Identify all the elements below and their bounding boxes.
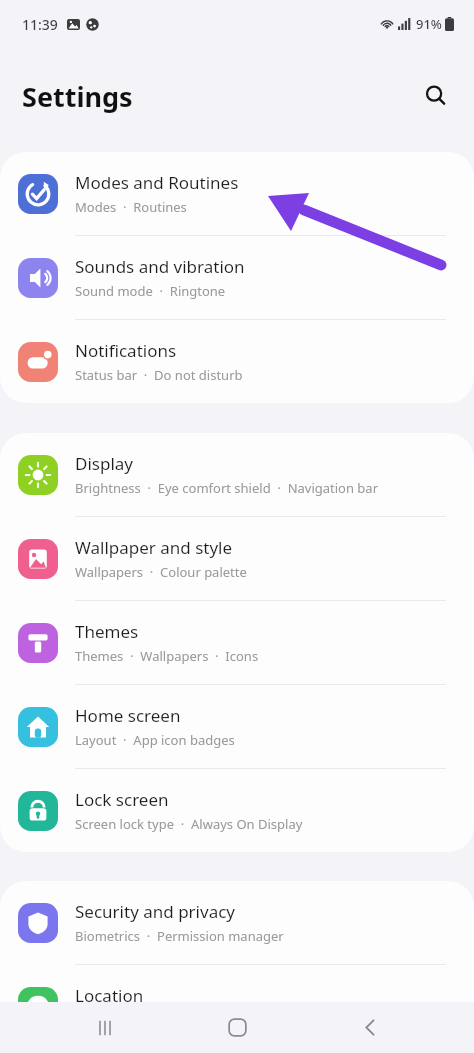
staticText: Modes and Routines [75,171,239,194]
button[interactable]: Home screen [0,685,474,769]
staticText: Sound mode · Ringtone [75,282,226,300]
staticText: Status bar · Do not disturb [75,366,243,384]
staticText: Security and privacy [75,900,236,923]
button[interactable]: Wallpaper and style [0,517,474,601]
staticText: 11:39 [22,15,58,34]
button[interactable]: Notifications [0,320,474,403]
button[interactable]: Back [342,1002,398,1053]
staticText: Location services · Recent access [75,1011,281,1029]
button[interactable]: Themes [0,601,474,685]
staticText: Lock screen [75,788,169,811]
staticText: Modes · Routines [75,198,187,216]
staticText: 91% [416,15,442,33]
staticText: Brightness · Eye comfort shield · Naviga… [75,479,379,497]
staticText: Display [75,452,133,475]
button[interactable]: Display [0,433,474,517]
staticText: Themes · Wallpapers · Icons [75,647,259,665]
button[interactable]: Home [209,1002,265,1053]
button[interactable]: Location [0,965,474,1048]
staticText: Location [75,984,144,1007]
button[interactable]: Recent apps [77,1002,133,1053]
button[interactable]: Security and privacy [0,881,474,965]
staticText: Home screen [75,704,181,727]
button[interactable]: Modes and Routines [0,152,474,236]
button[interactable]: Lock screen [0,769,474,852]
staticText: Notifications [75,339,177,362]
staticText: Layout · App icon badges [75,731,235,749]
button[interactable]: Search [412,72,460,120]
staticText: Themes [75,620,139,643]
staticText: Screen lock type · Always On Display [75,815,303,833]
button[interactable]: Sounds and vibration [0,236,474,320]
staticText: Wallpaper and style [75,536,233,559]
staticText: Biometrics · Permission manager [75,927,284,945]
staticText: Wallpapers · Colour palette [75,563,247,581]
staticText: Sounds and vibration [75,255,245,278]
staticText: Settings [22,78,133,115]
